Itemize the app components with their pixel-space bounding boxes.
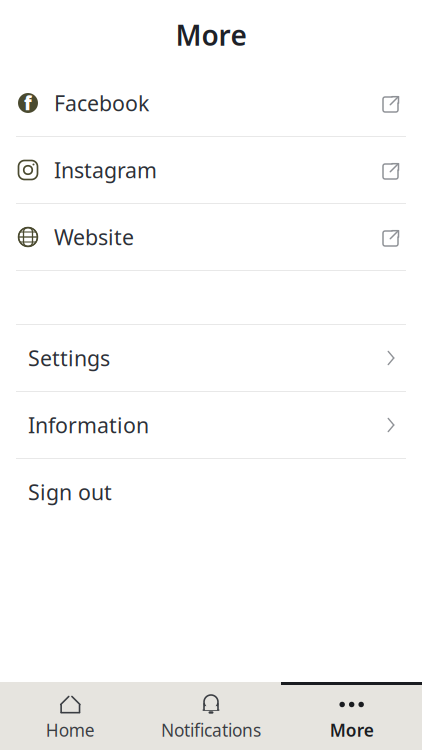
button[interactable]: f — [0, 70, 422, 136]
button[interactable]: Information — [0, 392, 422, 458]
button[interactable]: Settings — [0, 325, 422, 391]
button[interactable]: More — [281, 685, 422, 750]
button[interactable]: Website — [0, 204, 422, 270]
button[interactable]: Home — [0, 685, 141, 750]
staticText: Instagram — [54, 156, 157, 184]
staticText: Notifications — [161, 718, 261, 741]
staticText: Home — [46, 718, 95, 741]
staticText: Settings — [28, 344, 110, 372]
staticText: Website — [54, 223, 134, 251]
staticText: Information — [28, 411, 149, 439]
staticText: Sign out — [28, 478, 112, 506]
staticText: f — [24, 91, 32, 115]
staticText: More — [175, 16, 246, 54]
staticText: More — [330, 718, 374, 741]
button[interactable]: Notifications — [141, 685, 281, 750]
button[interactable]: Sign out — [0, 459, 422, 525]
staticText: Facebook — [54, 89, 149, 117]
button[interactable]: Instagram — [0, 137, 422, 203]
